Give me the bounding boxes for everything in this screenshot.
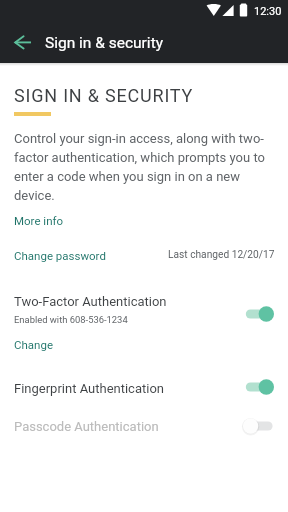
staticText: Change password	[14, 249, 106, 262]
staticText: Change	[14, 338, 53, 351]
staticText: Last changed 12/20/17	[168, 249, 275, 261]
button[interactable]: Passcode Authentication	[240, 414, 278, 438]
staticText: 12:30	[254, 5, 282, 18]
staticText: Control your sign-in access, along with …	[14, 131, 268, 203]
staticText: Sign in & security	[45, 34, 164, 52]
button[interactable]: Two-Factor Authentication	[240, 302, 278, 326]
button[interactable]: More info	[14, 214, 64, 227]
staticText: Enabled with 608-536-1234	[14, 314, 128, 325]
button[interactable]: Back	[2, 23, 42, 63]
staticText: Two-Factor Authentication	[14, 294, 167, 309]
button[interactable]: Change	[14, 338, 53, 351]
staticText: Fingerprint Authentication	[14, 381, 165, 396]
staticText: More info	[14, 214, 64, 227]
staticText: Passcode Authentication	[14, 419, 159, 434]
button[interactable]: Fingerprint Authentication	[240, 375, 278, 399]
staticText: SIGN IN & SECURITY	[14, 85, 194, 106]
button[interactable]: Change password	[14, 249, 106, 262]
